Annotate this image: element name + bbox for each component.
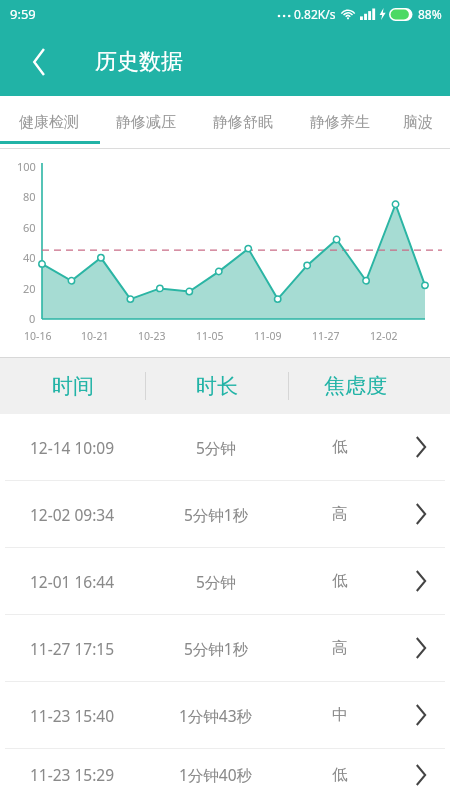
- staticText: 11-23 15:29: [30, 764, 115, 785]
- staticText: 10-21: [81, 329, 109, 343]
- staticText: 5分钟: [196, 571, 236, 592]
- staticText: 静修养生: [310, 113, 370, 132]
- staticText: 1分钟43秒: [179, 705, 253, 726]
- button[interactable]: 11-27 17:15: [0, 615, 450, 681]
- staticText: 0.82K/s: [294, 6, 336, 22]
- staticText: 20: [23, 281, 36, 296]
- button[interactable]: 12-01 16:44: [0, 548, 450, 614]
- staticText: 88%: [418, 6, 442, 22]
- staticText: 100: [17, 159, 36, 174]
- staticText: 脑波: [403, 113, 433, 132]
- staticText: 1分钟40秒: [179, 764, 253, 785]
- staticText: 80: [23, 189, 36, 204]
- staticText: 12-02 09:34: [30, 504, 115, 525]
- staticText: 60: [23, 220, 36, 235]
- button[interactable]: 静修减压: [97, 96, 194, 148]
- staticText: 静修减压: [116, 113, 176, 132]
- staticText: 中: [332, 705, 348, 725]
- button[interactable]: 脑波: [388, 96, 448, 148]
- staticText: 10-23: [138, 329, 166, 343]
- button[interactable]: 静修舒眠: [194, 96, 291, 148]
- staticText: 0: [29, 311, 36, 326]
- staticText: 静修舒眠: [213, 113, 273, 132]
- staticText: 5分钟1秒: [184, 638, 249, 659]
- staticText: 12-02: [370, 329, 398, 343]
- staticText: 健康检测: [19, 113, 79, 132]
- staticText: 高: [332, 638, 348, 658]
- staticText: 11-23 15:40: [30, 705, 115, 726]
- staticText: 高: [332, 504, 348, 524]
- button[interactable]: 11-23 15:29: [0, 749, 450, 800]
- staticText: 11-27 17:15: [30, 638, 115, 659]
- button[interactable]: 健康检测: [0, 96, 97, 148]
- staticText: 时间: [52, 373, 94, 399]
- staticText: 焦虑度: [324, 373, 387, 399]
- staticText: 12-01 16:44: [30, 571, 115, 592]
- staticText: 12-14 10:09: [30, 437, 115, 458]
- button[interactable]: 12-14 10:09: [0, 414, 450, 480]
- staticText: 11-05: [196, 329, 224, 343]
- staticText: 5分钟1秒: [184, 504, 249, 525]
- staticText: 9:59: [10, 5, 36, 23]
- button[interactable]: Back: [18, 40, 62, 84]
- staticText: 40: [23, 250, 36, 265]
- staticText: 11-27: [312, 329, 340, 343]
- button[interactable]: 12-02 09:34: [0, 481, 450, 547]
- staticText: 时长: [196, 373, 238, 399]
- staticText: 5分钟: [196, 437, 236, 458]
- button[interactable]: 11-23 15:40: [0, 682, 450, 748]
- staticText: 历史数据: [95, 48, 183, 76]
- staticText: 低: [332, 765, 348, 785]
- staticText: 11-09: [254, 329, 282, 343]
- staticText: 10-16: [24, 329, 52, 343]
- button[interactable]: 静修养生: [291, 96, 388, 148]
- staticText: 低: [332, 571, 348, 591]
- staticText: 低: [332, 437, 348, 457]
